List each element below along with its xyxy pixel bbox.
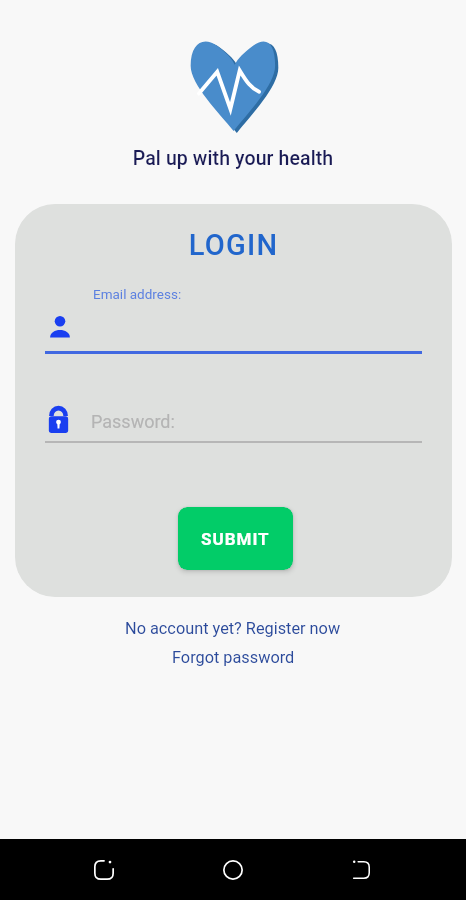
button[interactable]: No account yet? Register now [0, 615, 466, 641]
button[interactable]: SUBMIT [178, 507, 293, 570]
staticText: SUBMIT [201, 529, 270, 549]
staticText: LOGIN [15, 228, 452, 262]
button[interactable]: Forgot password [0, 644, 466, 670]
button[interactable]: Home [210, 839, 256, 900]
staticText: Password: [91, 411, 175, 432]
staticText: Forgot password [172, 648, 295, 667]
staticText: Email address: [93, 286, 182, 302]
button[interactable]: Recents [81, 839, 127, 900]
button[interactable]: Back [338, 839, 384, 900]
staticText: Pal up with your health [0, 147, 466, 170]
staticText: No account yet? Register now [125, 619, 341, 638]
